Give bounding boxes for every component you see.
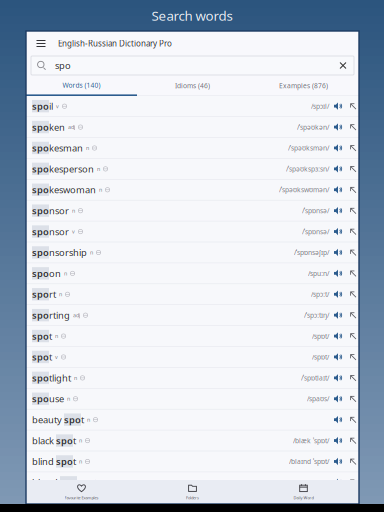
button[interactable]: Favourite Examples [26, 484, 137, 500]
staticText: spo [32, 393, 49, 405]
button[interactable]: Clear search [337, 59, 349, 71]
staticText: spo [32, 163, 49, 175]
staticText: spo [32, 142, 49, 154]
button[interactable]: spo [26, 326, 359, 347]
staticText: Idioms (46) [175, 81, 210, 90]
staticText: Favourite Examples [64, 495, 98, 500]
staticText: n [79, 437, 82, 444]
staticText: /spɒt/ [312, 352, 329, 361]
staticText: n [72, 207, 75, 214]
staticText: v [56, 103, 59, 110]
staticText: spo [56, 434, 73, 447]
staticText: adj [68, 123, 75, 131]
button[interactable]: spo [26, 242, 359, 263]
staticText: on [49, 267, 61, 280]
button[interactable]: spo [26, 221, 359, 242]
staticText: Words (140) [62, 81, 100, 90]
staticText: v [72, 228, 75, 235]
button[interactable]: spo [26, 159, 359, 180]
staticText: /ˈspɒnsə/ [302, 206, 329, 215]
staticText: use [49, 393, 64, 405]
staticText: spo [32, 225, 49, 238]
button[interactable]: beauty [26, 409, 359, 430]
button[interactable]: Menu [33, 34, 49, 52]
staticText: il [49, 100, 53, 112]
staticText: /ˈspɒnsə/ [302, 227, 329, 236]
staticText: n [55, 332, 58, 340]
staticText: /ˈspɒnsəʃɪp/ [294, 248, 329, 257]
staticText: t [73, 434, 76, 447]
button[interactable]: spo [26, 180, 359, 200]
staticText: spo [32, 121, 49, 133]
staticText: nsor [49, 204, 69, 217]
button[interactable]: spo [26, 389, 359, 409]
button[interactable]: blind [26, 451, 359, 472]
staticText: n [64, 270, 67, 277]
staticText: nsorship [49, 246, 87, 259]
button[interactable]: spo [26, 200, 359, 221]
button[interactable]: Words (140) [26, 76, 137, 96]
button[interactable]: Folders [137, 484, 248, 500]
staticText: spo [32, 184, 49, 196]
staticText: /ˈspəʊkswʊmən/ [279, 185, 329, 194]
staticText: spo [32, 372, 49, 384]
staticText: tlight [49, 372, 71, 384]
button[interactable]: spo [26, 117, 359, 138]
staticText: spo [56, 455, 73, 468]
staticText: ken [49, 121, 65, 133]
staticText: English-Russian Dictionary Pro [58, 38, 172, 49]
staticText: blind [32, 455, 56, 468]
staticText: n [87, 416, 90, 423]
button[interactable]: Idioms (46) [137, 76, 248, 96]
staticText: Search words [151, 7, 232, 24]
staticText: spo [60, 476, 77, 489]
staticText: kesperson [49, 163, 94, 175]
button[interactable]: spo [26, 368, 359, 389]
staticText: Folders [186, 495, 199, 500]
staticText: t [49, 330, 52, 342]
button[interactable]: Daily Word [248, 484, 359, 500]
staticText: spo [32, 204, 49, 217]
staticText: n [99, 186, 102, 193]
button[interactable]: black [26, 430, 359, 451]
staticText: n [74, 374, 77, 381]
staticText: spo [55, 59, 71, 72]
staticText: spo [32, 246, 49, 259]
button[interactable]: spo [26, 263, 359, 284]
staticText: /ˈspəʊkən/ [297, 123, 329, 131]
staticText: rt [77, 476, 84, 489]
staticText: rt [49, 288, 56, 300]
staticText: /spɔːt/ [311, 290, 329, 299]
staticText: spo [32, 100, 49, 112]
button[interactable]: spo [26, 347, 359, 368]
staticText: n [79, 458, 82, 465]
staticText: spo [64, 413, 81, 426]
button[interactable]: spo [26, 138, 359, 159]
staticText: /blæk ˈspɒt/ [293, 436, 329, 445]
staticText: /spɔɪl/ [311, 102, 329, 111]
staticText: /ˈspɒtlaɪt/ [301, 373, 329, 382]
staticText: n [86, 144, 89, 151]
staticText: t [49, 351, 52, 363]
staticText: spo [32, 267, 49, 280]
staticText: /spuːn/ [308, 269, 329, 278]
staticText: n [59, 291, 62, 298]
staticText: spo [32, 309, 49, 321]
staticText: v [55, 353, 58, 360]
staticText: kesman [49, 142, 83, 154]
button[interactable]: blood [26, 472, 359, 493]
staticText: n [90, 249, 93, 256]
staticText: spo [32, 351, 49, 363]
staticText: t [81, 413, 84, 426]
button[interactable]: spo [26, 284, 359, 305]
staticText: /blaɪnd ˈspɒt/ [289, 457, 329, 466]
staticText: black [32, 434, 56, 447]
staticText: blood [32, 476, 60, 489]
staticText: n [67, 395, 70, 402]
staticText: beauty [32, 413, 64, 426]
staticText: n [87, 479, 90, 486]
button[interactable]: spo [26, 305, 359, 326]
staticText: /ˈspɔːtɪŋ/ [304, 311, 329, 320]
button[interactable]: spo [26, 96, 359, 117]
button[interactable]: Examples (876) [248, 76, 359, 96]
